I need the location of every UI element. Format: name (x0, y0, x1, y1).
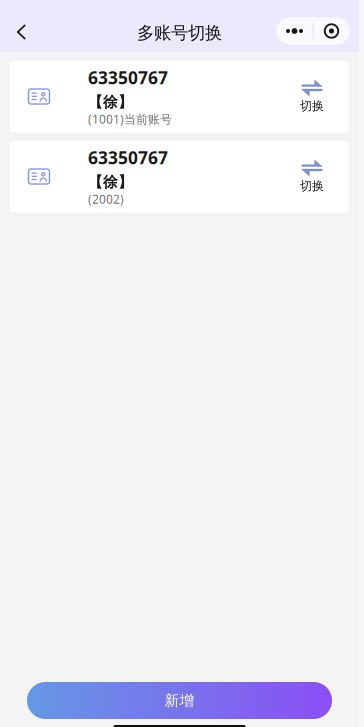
staticText: 多账号切换 (137, 22, 222, 44)
staticText: 新增 (164, 691, 194, 709)
button[interactable]: 63350767 (10, 61, 349, 132)
staticText: (1001)当前账号 (88, 111, 172, 127)
staticText: 【徐】 (88, 93, 133, 111)
button[interactable]: 63350767 (10, 141, 349, 212)
button[interactable]: Close (313, 17, 350, 44)
staticText: 【徐】 (88, 173, 133, 191)
staticText: 63350767 (88, 146, 168, 169)
staticText: 切换 (300, 99, 324, 113)
button[interactable]: Back (0, 10, 42, 52)
staticText: (2002) (88, 191, 124, 207)
button[interactable]: More (276, 17, 313, 44)
button[interactable]: 新增 (27, 682, 332, 719)
staticText: 切换 (300, 179, 324, 193)
staticText: 63350767 (88, 66, 168, 89)
